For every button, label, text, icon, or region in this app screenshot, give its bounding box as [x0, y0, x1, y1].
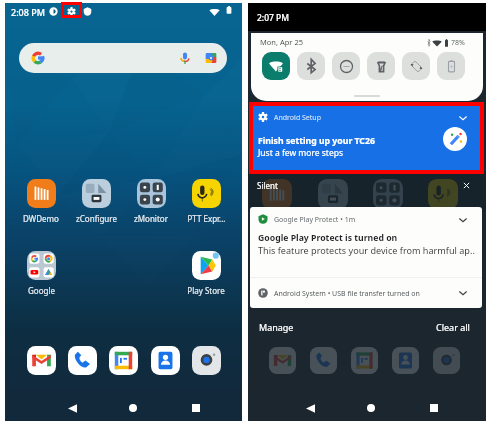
staticText: Android Setup — [274, 113, 321, 123]
button[interactable]: Recent apps — [425, 399, 443, 417]
staticText: 2:08 PM — [11, 6, 45, 18]
staticText: Mon, Apr 25 — [260, 37, 303, 47]
staticText: zMonitor — [134, 213, 168, 224]
staticText: Manage — [259, 321, 294, 333]
button[interactable]: Phone — [310, 347, 337, 374]
button[interactable]: zMonitor — [128, 179, 174, 224]
button[interactable]: Calendar — [351, 347, 378, 374]
button[interactable]: PTT Expr... — [183, 179, 229, 224]
staticText: Play Store — [187, 285, 225, 296]
button[interactable]: Auto-rotate — [402, 52, 430, 80]
button[interactable]: Contacts — [392, 347, 419, 374]
button[interactable]: Battery saver — [437, 52, 465, 80]
staticText: PTT Expr... — [187, 213, 226, 224]
button[interactable]: Gmail — [27, 346, 56, 375]
button[interactable]: Play Store — [183, 251, 229, 296]
button[interactable]: Do not disturb — [332, 52, 360, 80]
button[interactable]: Manage — [257, 319, 296, 335]
button[interactable]: Android System • USB file transfer turne… — [250, 277, 482, 308]
button[interactable]: Back — [301, 399, 319, 417]
staticText: Finish setting up your TC26 — [258, 135, 375, 147]
button[interactable]: DWDemo — [18, 179, 64, 224]
button[interactable]: Android Setup — [250, 105, 482, 172]
staticText: Google Play Protect is turned on — [258, 232, 398, 244]
staticText: DWDemo — [23, 213, 59, 224]
staticText: Google Play Protect • 1m — [274, 215, 356, 225]
button[interactable]: Camera — [192, 346, 221, 375]
button[interactable]: Clear silent notifications — [459, 178, 473, 192]
button[interactable]: Bluetooth — [297, 52, 325, 80]
button[interactable]: Gmail — [269, 347, 296, 374]
button[interactable]: Calendar — [109, 346, 138, 375]
staticText: zConfigure — [76, 213, 117, 224]
staticText: Silent — [257, 180, 278, 191]
staticText: Just a few more steps — [258, 147, 344, 159]
staticText: 2:07 PM — [257, 12, 290, 24]
staticText: Android System • USB file transfer turne… — [274, 289, 420, 299]
button[interactable]: Voice search — [178, 51, 192, 65]
button[interactable]: Phone — [68, 346, 97, 375]
button[interactable]: Wi-Fi — [262, 52, 290, 80]
button[interactable]: Google Play Protect • 1m — [250, 207, 482, 276]
button[interactable]: Recent apps — [187, 399, 205, 417]
staticText: Google — [28, 285, 55, 296]
button[interactable]: Flashlight — [367, 52, 395, 80]
button[interactable]: Expand — [457, 214, 469, 226]
button[interactable]: zConfigure — [73, 179, 119, 224]
staticText: 78% — [451, 38, 465, 48]
button[interactable]: Back — [63, 399, 81, 417]
button[interactable]: Contacts — [151, 346, 180, 375]
staticText: Clear all — [436, 321, 470, 333]
button[interactable]: Clear all — [434, 319, 472, 335]
button[interactable]: Google — [18, 251, 64, 296]
button[interactable]: Voice search — [19, 43, 227, 73]
button[interactable]: Home — [362, 399, 380, 417]
button[interactable]: Camera — [433, 347, 460, 374]
button[interactable]: Expand — [457, 112, 469, 124]
button[interactable]: Home — [124, 399, 142, 417]
button[interactable]: Google Lens — [204, 51, 218, 65]
staticText: This feature protects your device from h… — [258, 244, 475, 256]
button[interactable]: Expand — [457, 287, 469, 299]
